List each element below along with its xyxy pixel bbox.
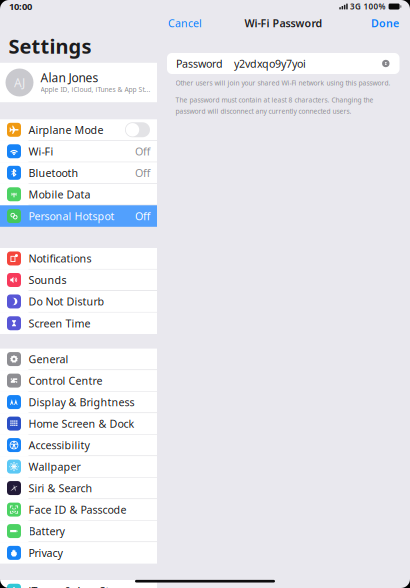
button[interactable]: Control Centre [0,370,157,392]
button[interactable]: Wi-Fi [0,141,157,162]
button[interactable]: Clear text [382,60,389,67]
button[interactable]: Bluetooth [0,162,157,184]
staticText: Control Centre [28,373,102,388]
button[interactable]: Mobile Data [0,184,157,205]
staticText: General [28,352,68,366]
staticText: y2vdxqo9y7yoi [234,56,306,71]
button[interactable]: Privacy [0,542,157,564]
staticText: password will disconnect any currently c… [175,107,351,116]
button[interactable]: Personal Hotspot [0,205,157,227]
staticText: AJ [14,74,25,90]
button[interactable]: Cancel [157,15,208,31]
button[interactable]: Sounds [0,269,157,291]
staticText: Off [135,166,150,180]
staticText: Siri & Search [28,481,92,495]
staticText: Sounds [28,273,66,287]
button[interactable]: Airplane Mode [0,119,157,141]
staticText: Wi-Fi [28,144,53,158]
staticText: Password [176,56,223,71]
button[interactable]: Done [365,15,410,31]
staticText: 10:00 [9,0,32,13]
staticText: Done [371,16,399,30]
staticText: Accessibility [28,438,89,452]
staticText: Personal Hotspot [28,209,114,223]
staticText: Home Screen & Dock [28,416,134,431]
staticText: Off [135,144,150,158]
staticText: Airplane Mode [28,123,103,137]
staticText: Display & Brightness [28,395,134,409]
staticText: Face ID & Passcode [28,502,126,517]
button[interactable]: Accessibility [0,435,157,456]
button[interactable]: iTunes & App Store [0,580,157,588]
staticText: Privacy [28,546,62,560]
staticText: Do Not Disturb [28,294,104,309]
button[interactable]: Screen Time [0,312,157,334]
staticText: 100% [363,1,385,12]
staticText: Bluetooth [28,166,78,180]
staticText: iTunes & App Store [28,584,125,588]
staticText: Screen Time [28,316,90,330]
staticText: The password must contain at least 8 cha… [175,96,373,104]
button[interactable]: Face ID & Passcode [0,499,157,521]
staticText: Settings [8,33,91,59]
staticText: Off [135,209,150,223]
staticText: Alan Jones [40,69,98,85]
button[interactable]: Do Not Disturb [0,291,157,312]
button[interactable]: Display & Brightness [0,392,157,413]
button[interactable]: AJ [0,63,157,102]
staticText: Other users will join your shared Wi-Fi … [175,79,390,87]
staticText: 3G [350,1,361,12]
staticText: Notifications [28,251,91,266]
button[interactable]: Battery [0,521,157,542]
staticText: Wallpaper [28,459,80,474]
button[interactable]: Notifications [0,248,157,269]
button[interactable]: Home Screen & Dock [0,413,157,435]
staticText: Wi-Fi Password [244,16,322,30]
button[interactable]: Wallpaper [0,456,157,478]
staticText: Mobile Data [28,187,90,201]
button[interactable]: Siri & Search [0,478,157,499]
staticText: Cancel [168,16,202,30]
staticText: Battery [28,524,64,538]
staticText: Apple ID, iCloud, iTunes & App St... [40,85,150,94]
button[interactable]: General [0,349,157,370]
